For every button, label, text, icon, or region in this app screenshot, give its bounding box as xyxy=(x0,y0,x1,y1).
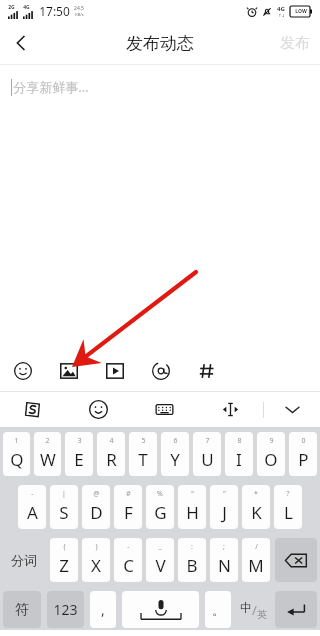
staticText: ” xyxy=(223,489,226,499)
button[interactable]: : xyxy=(178,538,206,582)
staticText: 4G xyxy=(277,5,285,13)
button[interactable]: ? xyxy=(274,485,302,529)
staticText: Q xyxy=(10,448,24,471)
staticText: ? xyxy=(286,489,290,499)
staticText: 3 xyxy=(77,436,82,446)
staticText: C xyxy=(123,554,134,577)
button[interactable]: 2 xyxy=(34,432,61,476)
button[interactable]: | xyxy=(50,485,78,529)
staticText: F xyxy=(124,501,133,524)
button[interactable]: ( xyxy=(50,538,78,582)
staticText: @ xyxy=(93,489,100,499)
button[interactable]: Move cursor xyxy=(197,392,263,427)
staticText: 1 xyxy=(14,436,19,446)
button[interactable]: Sogou input xyxy=(0,392,65,427)
staticText: G xyxy=(154,501,167,524)
staticText: 24.5 xyxy=(74,5,84,12)
button[interactable]: 9 xyxy=(257,432,285,476)
button[interactable]: Image xyxy=(54,356,84,386)
button[interactable]: 5 xyxy=(129,432,157,476)
staticText: | xyxy=(62,489,66,499)
staticText: 发布 xyxy=(280,34,310,53)
staticText: S xyxy=(59,501,69,524)
staticText: L xyxy=(284,501,293,524)
staticText: V xyxy=(155,554,166,577)
button[interactable]: Keyboard settings xyxy=(131,392,197,427)
staticText: M xyxy=(248,554,264,577)
button[interactable]: Topic xyxy=(192,356,222,386)
staticText: 英 xyxy=(257,608,267,621)
button[interactable]: Space xyxy=(122,591,199,628)
button[interactable]: 3 xyxy=(65,432,93,476)
button[interactable]: 。 xyxy=(205,591,231,628)
button[interactable]: 4 xyxy=(97,432,125,476)
button[interactable]: 发布 xyxy=(280,34,310,53)
button[interactable]: “ xyxy=(178,485,206,529)
staticText: A xyxy=(27,501,38,524)
staticText: 分词 xyxy=(11,552,37,568)
staticText: I xyxy=(236,448,242,471)
staticText: 2G xyxy=(8,4,15,11)
button[interactable]: Enter xyxy=(275,591,317,628)
button[interactable]: % xyxy=(146,485,174,529)
button[interactable]: ) xyxy=(82,538,110,582)
staticText: , xyxy=(101,600,105,619)
staticText: ↑↓ xyxy=(278,13,285,18)
button[interactable]: Emoji xyxy=(65,392,131,427)
staticText: E xyxy=(74,448,84,471)
staticText: % xyxy=(157,489,163,499)
button[interactable]: 6 xyxy=(161,432,189,476)
button[interactable]: 123 xyxy=(47,591,84,628)
staticText: 分享新鲜事... xyxy=(13,78,89,96)
staticText: 0 xyxy=(301,436,306,446)
button[interactable]: 1 xyxy=(3,432,30,476)
button[interactable]: - xyxy=(114,538,142,582)
button[interactable]: 符 xyxy=(3,591,41,628)
button[interactable]: Emoji xyxy=(8,356,38,386)
button[interactable]: ; xyxy=(210,538,238,582)
staticText: R xyxy=(106,448,117,471)
button[interactable]: Back xyxy=(0,22,42,64)
button[interactable]: 7 xyxy=(193,432,221,476)
button[interactable]: 8 xyxy=(225,432,253,476)
staticText: “ xyxy=(191,489,194,499)
staticText: 中 xyxy=(240,600,252,615)
staticText: ( xyxy=(63,542,66,552)
staticText: : xyxy=(191,542,193,552)
button[interactable]: _ xyxy=(146,538,174,582)
button[interactable]: / xyxy=(242,538,270,582)
button[interactable]: Backspace xyxy=(275,538,317,582)
button[interactable]: 0 xyxy=(289,432,317,476)
staticText: 6 xyxy=(173,436,178,446)
staticText: KB/s xyxy=(75,12,84,17)
staticText: 。 xyxy=(212,602,225,618)
staticText: U xyxy=(201,448,214,471)
staticText: D xyxy=(90,501,103,524)
staticText: X xyxy=(91,554,101,577)
staticText: H xyxy=(186,501,199,524)
button[interactable]: - xyxy=(18,485,46,529)
button[interactable]: , xyxy=(90,591,116,628)
staticText: * xyxy=(254,489,258,499)
staticText: - xyxy=(31,489,34,499)
staticText: Y xyxy=(170,448,180,471)
button[interactable]: 分词 xyxy=(3,538,45,582)
staticText: # xyxy=(126,489,131,499)
button[interactable]: * xyxy=(242,485,270,529)
button[interactable]: # xyxy=(114,485,142,529)
button[interactable]: ” xyxy=(210,485,238,529)
staticText: N xyxy=(218,554,231,577)
staticText: 8 xyxy=(237,436,242,446)
button[interactable]: @ xyxy=(82,485,110,529)
staticText: 2 xyxy=(45,436,50,446)
button[interactable]: Chinese English toggle xyxy=(237,591,269,628)
staticText: 123 xyxy=(53,600,78,619)
button[interactable]: Video xyxy=(100,356,130,386)
button[interactable]: Hide keyboard xyxy=(264,392,320,427)
staticText: O xyxy=(264,448,278,471)
button[interactable]: Mention xyxy=(146,356,176,386)
staticText: J xyxy=(222,501,227,524)
staticText: 7 xyxy=(205,436,210,446)
staticText: / xyxy=(255,542,258,552)
staticText: ) xyxy=(95,542,98,552)
